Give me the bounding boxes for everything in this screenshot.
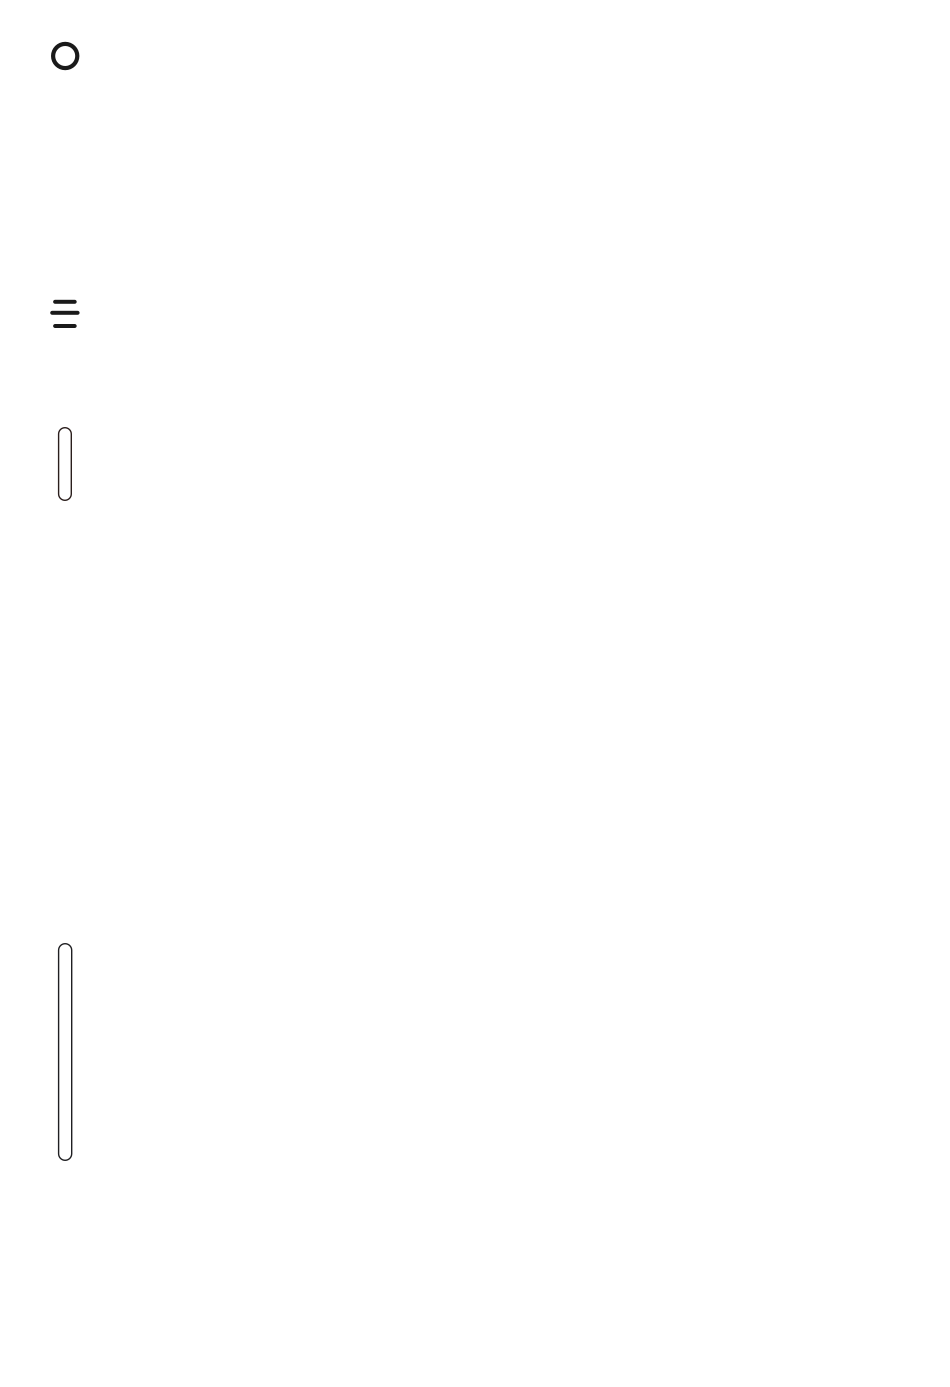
button[interactable]: Menu bbox=[38, 288, 92, 340]
button[interactable]: Level bbox=[49, 934, 82, 1170]
button[interactable]: Profile bbox=[41, 32, 89, 80]
button[interactable]: Option bbox=[49, 418, 81, 510]
